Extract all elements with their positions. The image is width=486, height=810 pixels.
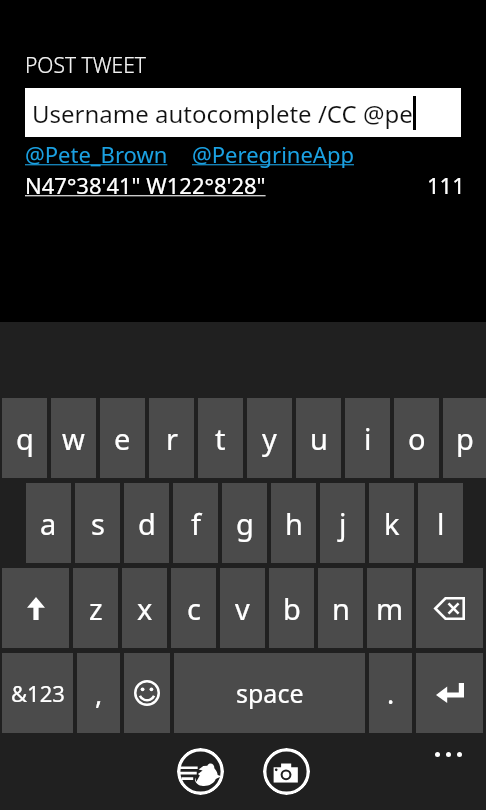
button[interactable]: n <box>318 568 363 648</box>
button[interactable]: Emoji <box>124 653 170 733</box>
button[interactable]: q <box>2 398 47 478</box>
staticText: n <box>332 589 350 628</box>
button[interactable]: o <box>394 398 439 478</box>
button[interactable]: w <box>51 398 96 478</box>
button[interactable]: d <box>124 483 169 563</box>
staticText: t <box>215 419 226 458</box>
staticText: &123 <box>11 678 65 708</box>
staticText: c <box>187 589 201 628</box>
staticText: Username autocomplete /CC @pe <box>32 97 413 130</box>
button[interactable]: r <box>149 398 194 478</box>
other: Enter <box>436 683 464 703</box>
button[interactable]: . <box>369 653 412 733</box>
button[interactable]: , <box>77 653 120 733</box>
staticText: k <box>384 504 400 543</box>
button[interactable]: u <box>296 398 341 478</box>
button[interactable]: g <box>222 483 267 563</box>
staticText: g <box>236 504 254 543</box>
button[interactable]: @Pete_Brown <box>25 139 168 169</box>
staticText: w <box>62 419 85 458</box>
staticText: l <box>437 504 445 543</box>
button[interactable]: s <box>75 483 120 563</box>
staticText: b <box>283 589 301 628</box>
staticText: f <box>191 504 201 543</box>
staticText: p <box>456 419 474 458</box>
staticText: s <box>91 504 105 543</box>
staticText: y <box>262 419 277 458</box>
staticText: a <box>40 504 57 543</box>
button[interactable]: y <box>247 398 292 478</box>
staticText: . <box>387 675 395 712</box>
staticText: r <box>166 419 178 458</box>
button[interactable]: b <box>269 568 314 648</box>
button[interactable]: x <box>122 568 167 648</box>
staticText: h <box>285 504 303 543</box>
button[interactable]: l <box>418 483 463 563</box>
button[interactable]: Enter <box>416 653 483 733</box>
button[interactable]: c <box>171 568 216 648</box>
button[interactable]: f <box>173 483 218 563</box>
button[interactable]: z <box>73 568 118 648</box>
button[interactable]: Shift <box>2 568 69 648</box>
other: Shift <box>27 597 45 620</box>
button[interactable]: &123 <box>2 653 73 733</box>
button[interactable]: Tweet <box>177 748 224 795</box>
button[interactable]: j <box>320 483 365 563</box>
staticText: d <box>138 504 156 543</box>
button[interactable]: space <box>174 653 365 733</box>
button[interactable]: Backspace <box>416 568 483 648</box>
staticText: v <box>235 589 250 628</box>
staticText: N47°38'41" W122°8'28" <box>25 170 266 200</box>
staticText: u <box>310 419 328 458</box>
staticText: o <box>408 419 426 458</box>
other: Backspace <box>434 597 465 620</box>
staticText: POST TWEET <box>25 51 146 80</box>
button[interactable]: p <box>443 398 486 478</box>
staticText: j <box>339 504 347 543</box>
button[interactable]: @PeregrineApp <box>192 139 354 169</box>
button[interactable]: a <box>26 483 71 563</box>
staticText: i <box>364 419 372 458</box>
button[interactable]: Username autocomplete /CC @pe <box>25 88 461 137</box>
button[interactable]: i <box>345 398 390 478</box>
staticText: m <box>376 589 404 628</box>
button[interactable]: v <box>220 568 265 648</box>
staticText: , <box>95 675 103 712</box>
button[interactable]: e <box>100 398 145 478</box>
button[interactable]: m <box>367 568 412 648</box>
staticText: z <box>89 589 103 628</box>
staticText: space <box>236 676 304 710</box>
button[interactable]: t <box>198 398 243 478</box>
button[interactable]: h <box>271 483 316 563</box>
staticText: x <box>137 589 153 628</box>
other: Emoji <box>134 680 160 706</box>
button[interactable]: k <box>369 483 414 563</box>
button[interactable]: Camera <box>263 748 310 795</box>
staticText: q <box>16 419 34 458</box>
staticText: 111 <box>427 170 465 200</box>
staticText: e <box>114 419 131 458</box>
